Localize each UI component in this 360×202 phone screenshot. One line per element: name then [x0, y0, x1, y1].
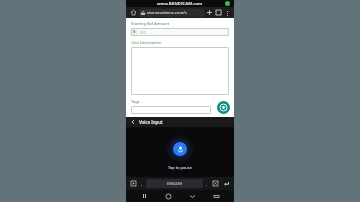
button[interactable]: Home [129, 8, 138, 17]
staticText: , [141, 181, 143, 187]
staticText: Unit Description [131, 40, 162, 45]
staticText: storeauctions.com/s [147, 10, 187, 16]
button[interactable]: More options [223, 9, 231, 17]
button[interactable]: Tap to pause [173, 142, 187, 156]
staticText: Voice Input [139, 119, 163, 125]
button[interactable] [131, 106, 211, 114]
button[interactable]: Comma [140, 179, 144, 188]
staticText: $ [133, 29, 136, 35]
button[interactable]: Keyboard [129, 179, 138, 188]
staticText: Tap to pause [168, 165, 192, 170]
button[interactable] [131, 47, 229, 95]
button[interactable]: Period [205, 179, 209, 188]
staticText: . [206, 181, 208, 187]
button[interactable]: Enter [222, 179, 231, 188]
staticText: Tags [131, 99, 140, 104]
button[interactable]: storeauctions.com/s [138, 9, 205, 17]
button[interactable]: Tabs [214, 8, 223, 17]
button[interactable]: Back [186, 190, 198, 202]
button[interactable]: Back [129, 118, 137, 126]
button[interactable]: Add [205, 8, 214, 17]
button[interactable]: ENGLISH [146, 179, 203, 188]
button[interactable]: Home [162, 190, 174, 202]
staticText: ENGLISH [167, 181, 183, 186]
button[interactable]: Backspace [211, 179, 220, 188]
button[interactable]: Recents [138, 190, 150, 202]
button[interactable]: Voice input [217, 101, 230, 114]
staticText: Starting Bid Amount [131, 21, 170, 26]
staticText: www.BANDICAM.com [157, 1, 203, 7]
button[interactable]: Hide keyboard [210, 190, 222, 202]
button[interactable]: $ [131, 28, 229, 36]
